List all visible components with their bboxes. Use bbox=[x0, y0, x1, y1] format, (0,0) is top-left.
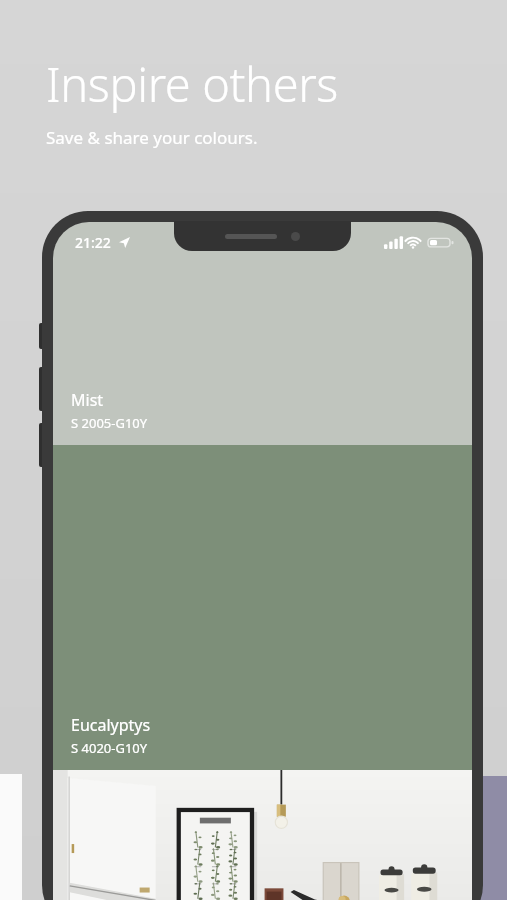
staticText: Inspire others bbox=[46, 52, 338, 116]
other: Location bbox=[119, 237, 130, 248]
other: Kitchen interior photo bbox=[53, 770, 472, 900]
staticText: 21:22 bbox=[75, 233, 111, 252]
button[interactable]: Eucalyptys bbox=[53, 445, 472, 770]
staticText: S 2005-G10Y bbox=[71, 414, 148, 432]
staticText: Eucalyptys bbox=[71, 714, 151, 736]
button[interactable]: 21:22 bbox=[53, 222, 472, 445]
button[interactable]: Kitchen interior photo bbox=[53, 770, 472, 900]
other: Signal, Wi-Fi and battery bbox=[384, 236, 452, 249]
staticText: Save & share your colours. bbox=[46, 126, 258, 149]
staticText: Mist bbox=[71, 389, 104, 411]
staticText: S 4020-G10Y bbox=[71, 739, 148, 757]
